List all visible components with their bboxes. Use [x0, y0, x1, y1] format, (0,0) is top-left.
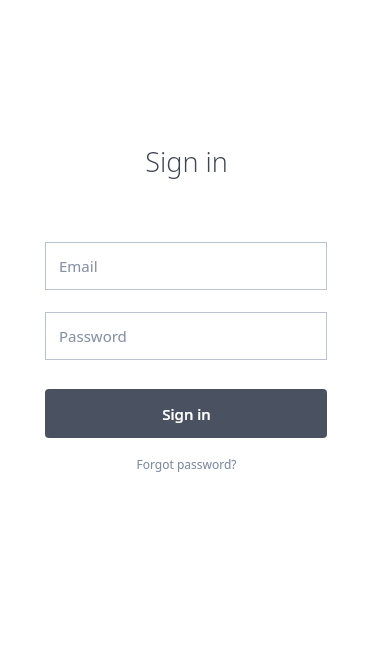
staticText: Sign in [145, 143, 228, 180]
button[interactable]: Password [45, 312, 327, 360]
staticText: Password [59, 326, 127, 346]
staticText: Sign in [162, 404, 211, 424]
button[interactable]: Email [45, 242, 327, 290]
staticText: Email [59, 256, 98, 276]
staticText: Forgot password? [136, 456, 237, 472]
button[interactable]: Sign in [45, 389, 327, 438]
button[interactable]: Forgot password? [128, 453, 245, 475]
